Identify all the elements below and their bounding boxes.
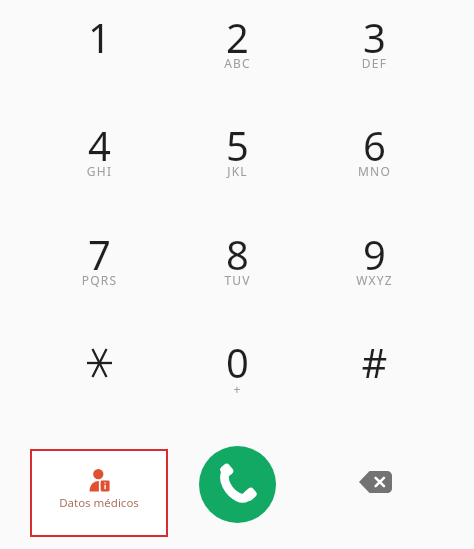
- button[interactable]: 3: [306, 0, 443, 108]
- staticText: Datos médicos: [32, 495, 166, 511]
- button[interactable]: 5: [169, 108, 306, 216]
- button[interactable]: 6: [306, 108, 443, 216]
- button[interactable]: 4: [31, 108, 168, 216]
- staticText: DEF: [306, 55, 443, 71]
- staticText: 6: [306, 118, 443, 172]
- staticText: 3: [306, 10, 443, 64]
- button[interactable]: 7: [31, 217, 168, 325]
- button[interactable]: star: [31, 325, 168, 433]
- staticText: 4: [31, 118, 168, 172]
- staticText: 0: [169, 335, 306, 389]
- staticText: PQRS: [31, 272, 168, 288]
- staticText: 9: [306, 227, 443, 281]
- button[interactable]: Call: [199, 446, 276, 523]
- staticText: WXYZ: [306, 272, 443, 288]
- staticText: TUV: [169, 272, 306, 288]
- button[interactable]: 9: [306, 217, 443, 325]
- staticText: GHI: [31, 163, 168, 179]
- staticText: #: [306, 335, 443, 389]
- staticText: ABC: [169, 55, 306, 71]
- staticText: 2: [169, 10, 306, 64]
- staticText: JKL: [169, 163, 306, 179]
- staticText: +: [169, 381, 306, 397]
- button[interactable]: 1: [31, 0, 168, 108]
- button[interactable]: 0: [169, 325, 306, 433]
- staticText: 8: [169, 227, 306, 281]
- button[interactable]: Backspace: [344, 460, 406, 504]
- staticText: 1: [31, 10, 168, 64]
- button[interactable]: 8: [169, 217, 306, 325]
- staticText: 7: [31, 227, 168, 281]
- button[interactable]: 2: [169, 0, 306, 108]
- staticText: 5: [169, 118, 306, 172]
- button[interactable]: Datos médicos: [32, 451, 166, 535]
- staticText: MNO: [306, 163, 443, 179]
- button[interactable]: #: [306, 325, 443, 433]
